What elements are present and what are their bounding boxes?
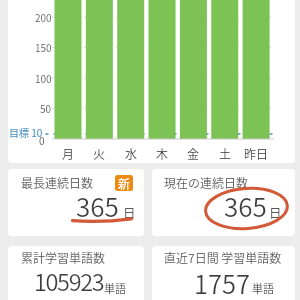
staticText: 日	[123, 203, 136, 221]
staticText: 200	[35, 10, 52, 24]
staticText: 火	[93, 145, 106, 162]
staticText: 単語	[104, 280, 126, 296]
staticText: 365	[76, 187, 119, 225]
staticText: 150	[35, 40, 52, 54]
staticText: 累計学習単語数	[21, 249, 106, 266]
button[interactable]	[8, 169, 144, 236]
staticText: 土	[219, 145, 232, 162]
staticText: 日	[269, 203, 282, 221]
staticText: 100	[35, 71, 52, 85]
staticText: 新	[118, 175, 131, 191]
staticText: 現在の連続日数	[164, 174, 249, 191]
staticText: 目標 10	[9, 125, 43, 139]
staticText: 昨日	[244, 145, 269, 162]
staticText: 月	[62, 145, 75, 162]
staticText: 105923	[34, 264, 104, 298]
staticText: 1757	[194, 264, 250, 300]
staticText: 0	[39, 133, 45, 147]
button[interactable]	[152, 169, 295, 236]
staticText: 木	[156, 145, 169, 162]
staticText: 水	[125, 145, 138, 162]
staticText: 金	[187, 145, 200, 162]
staticText: 最長連続日数	[21, 174, 94, 191]
button[interactable]	[8, 0, 295, 163]
button[interactable]	[152, 246, 295, 300]
staticText: 365	[224, 187, 267, 225]
staticText: 50	[40, 101, 52, 115]
staticText: 直近7日間 学習単語数	[164, 249, 282, 266]
button[interactable]	[8, 246, 144, 300]
staticText: 単語	[252, 280, 274, 296]
